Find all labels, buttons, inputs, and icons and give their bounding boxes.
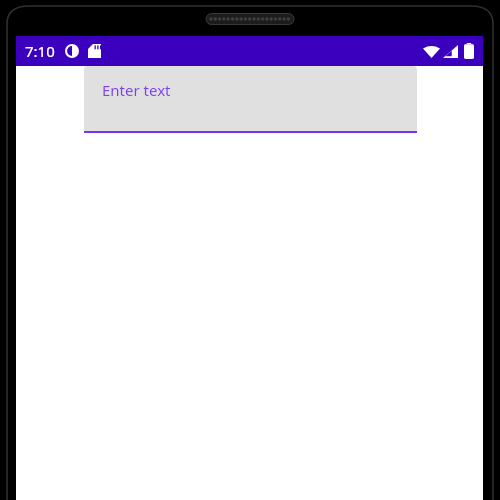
staticText: Enter text (102, 80, 171, 100)
staticText: 7:10 (25, 41, 55, 61)
button[interactable]: Enter text (84, 66, 417, 133)
